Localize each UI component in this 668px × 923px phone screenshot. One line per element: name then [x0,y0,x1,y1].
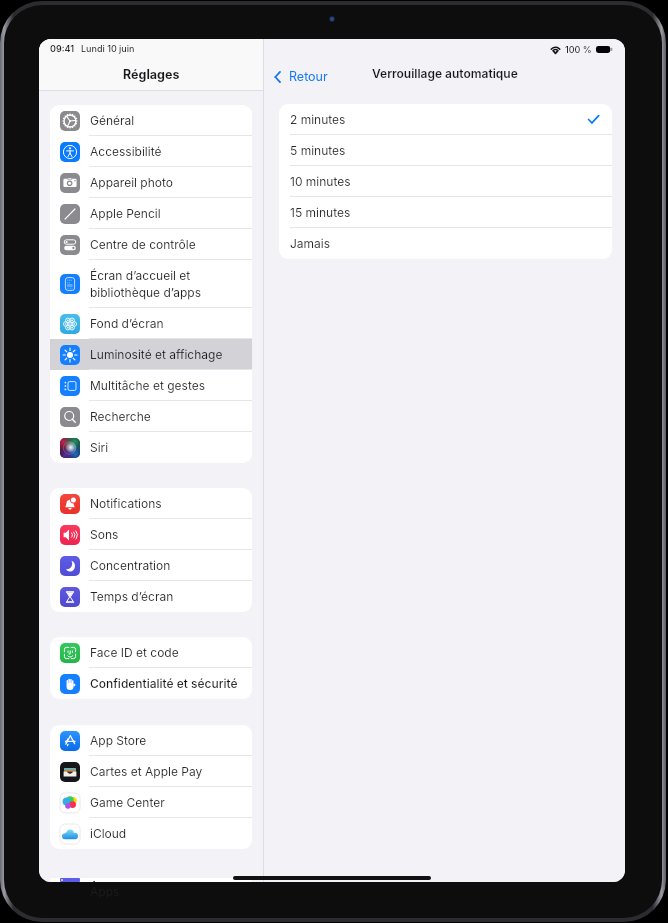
staticText: Retour [289,69,328,84]
staticText: Verrouillage automatique [372,66,518,81]
staticText: Game Center [90,795,165,810]
staticText: Écran d’accueil et [90,268,191,283]
staticText: Confidentialité et sécurité [90,676,238,691]
button[interactable]: 15 minutes [279,197,612,228]
staticText: Face ID et code [90,645,179,660]
staticText: Réglages [123,67,180,82]
button[interactable]: Retour [264,66,334,87]
button[interactable]: Confidentialité et sécurité [50,668,252,699]
staticText: 15 minutes [290,205,351,220]
button[interactable]: 2 minutes [279,104,612,135]
staticText: Cartes et Apple Pay [90,764,203,779]
staticText: Sons [90,527,119,542]
button[interactable]: Sons [50,519,252,550]
button[interactable]: Écran d’accueil et [50,260,252,308]
staticText: Recherche [90,409,151,424]
staticText: Apps [90,878,120,882]
other: Batterie [596,46,613,53]
button[interactable]: Temps d’écran [50,581,252,612]
button[interactable]: Jamais [279,228,612,259]
button[interactable]: Multitâche et gestes [50,370,252,401]
staticText: Concentration [90,558,171,573]
staticText: Lundi 10 juin [81,43,135,54]
button[interactable]: Concentration [50,550,252,581]
staticText: 5 minutes [290,143,346,158]
staticText: Apple Pencil [90,206,161,221]
button[interactable]: App Store [50,725,252,756]
staticText: Notifications [90,496,162,511]
button[interactable]: Accessibilité [50,136,252,167]
staticText: Fond d’écran [90,316,164,331]
staticText: Centre de contrôle [90,237,196,252]
button[interactable]: Game Center [50,787,252,818]
button[interactable]: Notifications [50,488,252,519]
staticText: iCloud [90,826,127,841]
staticText: 10 minutes [290,174,351,189]
staticText: Général [90,113,135,128]
staticText: 2 minutes [290,112,346,127]
staticText: Luminosité et affichage [90,347,223,362]
staticText: Appareil photo [90,175,173,190]
other: Wi-Fi [550,45,561,54]
staticText: App Store [90,733,147,748]
staticText: 09:41 [50,43,75,54]
button[interactable]: Centre de contrôle [50,229,252,260]
button[interactable]: Fond d’écran [50,308,252,339]
button[interactable]: 5 minutes [279,135,612,166]
staticText: Accessibilité [90,144,162,159]
button[interactable]: Luminosité et affichage [50,339,252,370]
staticText: 100 % [565,44,592,55]
button[interactable]: Général [50,105,252,136]
button[interactable]: Face ID et code [50,637,252,668]
staticText: Siri [90,440,109,455]
button[interactable]: Cartes et Apple Pay [50,756,252,787]
button[interactable]: Appareil photo [50,167,252,198]
staticText: Multitâche et gestes [90,378,206,393]
button[interactable]: iCloud [50,818,252,849]
button[interactable]: Apple Pencil [50,198,252,229]
button[interactable]: Siri [50,432,252,463]
button[interactable]: 10 minutes [279,166,612,197]
staticText: Jamais [290,236,331,251]
staticText: Temps d’écran [90,589,174,604]
staticText: Apps [90,884,120,899]
button[interactable]: Apps [50,878,252,882]
staticText: bibliothèque d’apps [90,285,202,300]
button[interactable]: Recherche [50,401,252,432]
